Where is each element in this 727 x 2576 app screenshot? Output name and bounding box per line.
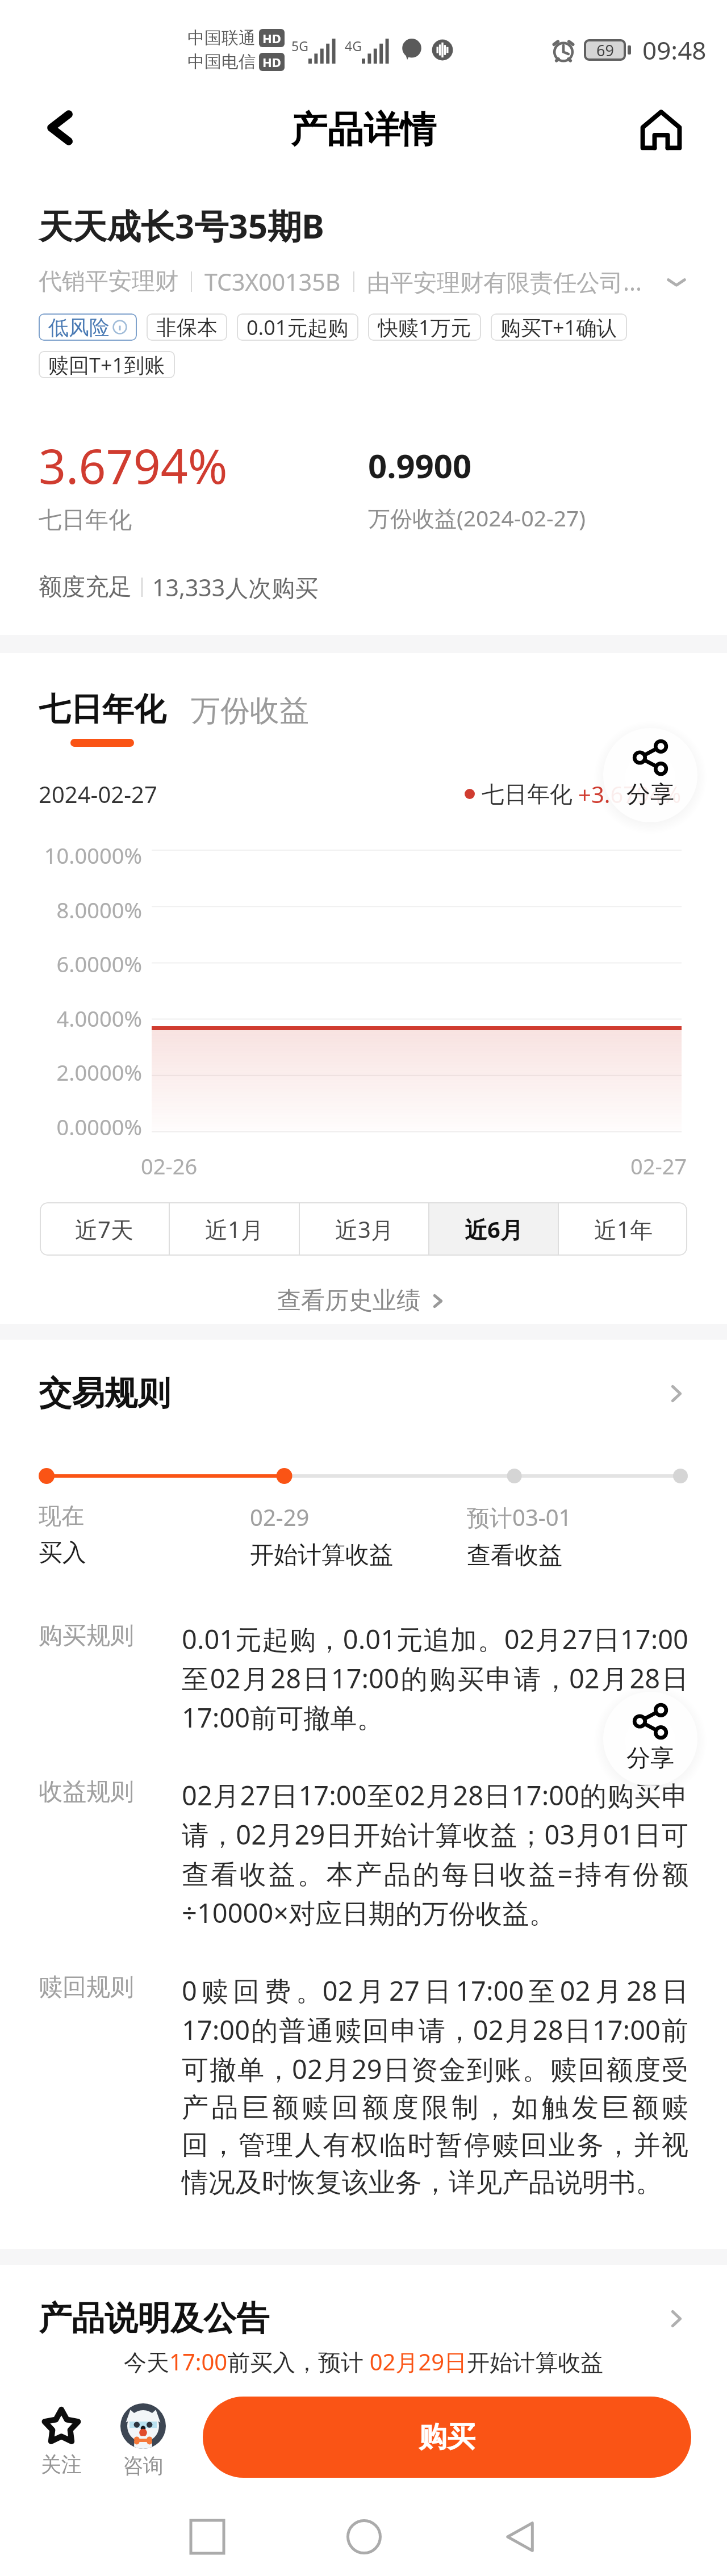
button[interactable]: 产品说明及公告	[39, 2298, 688, 2339]
button[interactable]: Recent apps	[182, 2511, 233, 2562]
staticText: 七日年化	[482, 780, 573, 808]
staticText: 0.01元起购，0.01元追加。02月27日17:00至02月28日17:00的…	[182, 1621, 688, 1736]
staticText: 咨询	[123, 2453, 164, 2478]
staticText: 代销平安理财	[39, 267, 178, 296]
staticText: 0.01元起购	[246, 313, 349, 341]
staticText: 近1月	[205, 1214, 264, 1245]
staticText: 09:48	[642, 33, 707, 67]
staticText: 2.0000%	[0, 1057, 142, 1087]
staticText: HD	[262, 53, 281, 70]
staticText: 4.0000%	[0, 1003, 142, 1033]
staticText: 中国电信	[187, 51, 256, 73]
staticText: 近6月	[465, 1214, 523, 1245]
staticText: 七日年化	[39, 505, 132, 535]
staticText: 69	[596, 40, 614, 61]
staticText: 近3月	[335, 1214, 394, 1245]
button[interactable]: 咨询	[120, 2403, 166, 2478]
staticText: 02-29	[250, 1502, 310, 1532]
staticText: 买入	[39, 1538, 86, 1568]
button[interactable]: 近6月	[429, 1202, 558, 1256]
button[interactable]: 购买	[203, 2397, 691, 2478]
staticText: 额度充足	[39, 572, 132, 602]
staticText: 4G	[345, 37, 362, 55]
staticText: 非保本	[156, 315, 218, 340]
staticText: 0.0000%	[0, 1112, 142, 1141]
staticText: 13,333人次购买	[152, 571, 319, 603]
button[interactable]: 近1年	[559, 1202, 687, 1256]
staticText: 交易规则	[39, 1373, 170, 1414]
button[interactable]: 近1月	[170, 1202, 299, 1256]
staticText: 查看收益	[467, 1541, 562, 1571]
button[interactable]: 关注	[41, 2403, 82, 2477]
staticText: 七日年化	[39, 689, 166, 730]
staticText: 查看历史业绩	[277, 1286, 420, 1316]
staticText: 02月27日17:00至02月28日17:00的购买申请，02月29日开始计算收…	[182, 1777, 688, 1931]
staticText: 开始计算收益	[250, 1540, 393, 1570]
staticText: 购买T+1确认	[500, 313, 617, 341]
staticText: 万份收益	[191, 692, 309, 730]
staticText: 由平安理财有限责任公司...	[367, 266, 642, 298]
staticText: 现在	[39, 1502, 84, 1530]
button[interactable]: Home	[641, 109, 682, 150]
button[interactable]: Share	[603, 1692, 697, 1786]
staticText: 关注	[41, 2452, 82, 2477]
staticText: TC3X00135B	[204, 266, 341, 298]
staticText: 3.6794%	[39, 433, 228, 497]
staticText: 分享	[626, 1743, 674, 1774]
staticText: 中国联通	[187, 27, 256, 49]
staticText: 5G	[291, 37, 308, 55]
staticText: 产品说明及公告	[39, 2298, 269, 2339]
staticText: 0赎回费。02月27日17:00至02月28日17:00的普通赎回申请，02月2…	[182, 1972, 688, 2199]
staticText: 低风险	[48, 315, 110, 340]
button[interactable]: Share	[603, 728, 697, 822]
staticText: 购买规则	[39, 1621, 182, 1651]
staticText: 近1年	[594, 1214, 653, 1245]
button[interactable]: 交易规则	[39, 1373, 688, 1414]
button[interactable]: 查看历史业绩	[0, 1286, 727, 1316]
staticText: 万份收益(2024-02-27)	[368, 503, 586, 533]
staticText: 近7天	[75, 1214, 133, 1245]
staticText: 0.9900	[368, 443, 472, 488]
staticText: 02-27	[630, 1151, 687, 1181]
staticText: +3.6794%	[578, 779, 682, 809]
staticText: 10.0000%	[0, 840, 142, 870]
button[interactable]: Back	[41, 108, 81, 148]
staticText: 6.0000%	[0, 949, 142, 978]
staticText: 收益规则	[39, 1777, 182, 1807]
button[interactable]: Back	[495, 2511, 546, 2562]
staticText: 赎回规则	[39, 1972, 182, 2002]
staticText: 预计03-01	[467, 1502, 572, 1533]
staticText: 8.0000%	[0, 895, 142, 925]
staticText: 快赎1万元	[378, 313, 471, 341]
button[interactable]: 近3月	[300, 1202, 428, 1256]
staticText: 分享	[626, 780, 674, 810]
staticText: 天天成长3号35期B	[39, 202, 324, 249]
staticText: HD	[262, 30, 281, 47]
button[interactable]: Home	[339, 2511, 390, 2562]
staticText: 购买	[419, 2419, 475, 2455]
staticText: 产品详情	[291, 107, 436, 153]
button[interactable]: 近7天	[40, 1202, 169, 1256]
staticText: 2024-02-27	[39, 779, 157, 809]
staticText: 赎回T+1到账	[48, 351, 165, 378]
staticText: 今天17:00前买入，预计 02月29日开始计算收益	[124, 2346, 604, 2377]
staticText: 02-26	[141, 1151, 198, 1181]
